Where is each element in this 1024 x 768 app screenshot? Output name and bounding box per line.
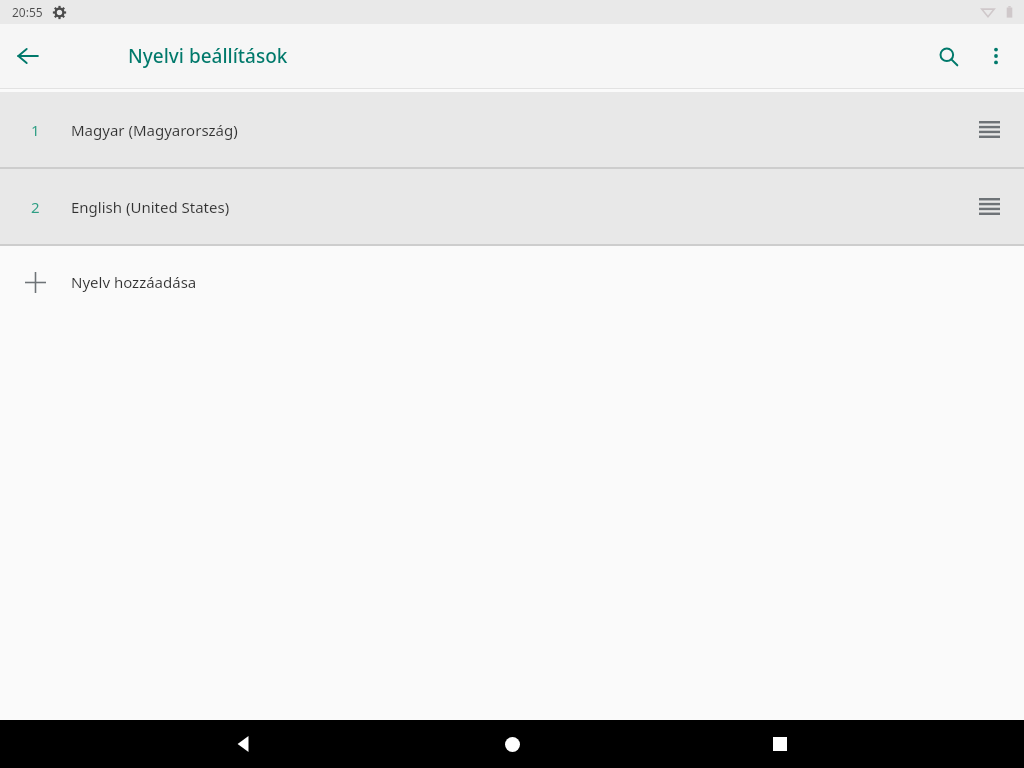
staticText: 20:55 — [12, 4, 43, 20]
button[interactable]: Back — [220, 720, 268, 768]
button[interactable]: Recent apps — [756, 720, 804, 768]
staticText: Magyar (Magyarország) — [71, 120, 238, 140]
button[interactable]: Nyelv hozzáadása — [0, 246, 1024, 318]
button[interactable]: Search — [924, 32, 972, 80]
staticText: Nyelv hozzáadása — [71, 272, 197, 292]
staticText: 1 — [31, 120, 40, 140]
staticText: English (United States) — [71, 197, 230, 217]
button[interactable]: More options — [972, 32, 1020, 80]
button[interactable]: Home — [488, 720, 536, 768]
staticText: Nyelvi beállítások — [128, 43, 288, 69]
button[interactable]: Reorder — [954, 92, 1024, 167]
button[interactable]: 2 — [0, 169, 1024, 244]
button[interactable]: 1 — [0, 92, 1024, 167]
button[interactable]: Reorder — [954, 169, 1024, 244]
button[interactable]: Back — [8, 36, 48, 76]
staticText: 2 — [31, 197, 40, 217]
